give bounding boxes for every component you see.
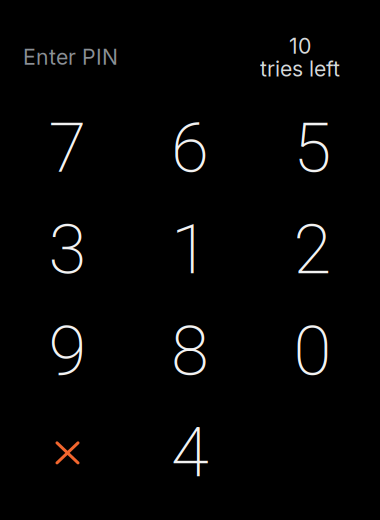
- button[interactable]: 9: [6, 301, 129, 402]
- button[interactable]: 0: [251, 301, 374, 402]
- staticText: 8: [171, 311, 209, 392]
- button[interactable]: 3: [6, 199, 129, 301]
- staticText: 0: [293, 311, 331, 392]
- staticText: 1: [171, 210, 209, 290]
- staticText: tries left: [260, 56, 340, 82]
- button[interactable]: 5: [251, 98, 374, 199]
- button[interactable]: 4: [129, 402, 251, 504]
- staticText: 2: [293, 210, 331, 290]
- staticText: Enter PIN: [23, 44, 118, 70]
- button[interactable]: 6: [129, 98, 251, 199]
- button[interactable]: 1: [129, 199, 251, 301]
- staticText: 10: [289, 33, 311, 59]
- button[interactable]: 7: [6, 98, 129, 199]
- staticText: 6: [171, 108, 209, 189]
- staticText: 5: [293, 108, 331, 189]
- staticText: 3: [48, 210, 86, 290]
- staticText: 7: [48, 108, 86, 189]
- button[interactable]: 2: [251, 199, 374, 301]
- button[interactable]: 8: [129, 301, 251, 402]
- staticText: 9: [48, 311, 86, 392]
- staticText: 4: [171, 413, 209, 493]
- button[interactable]: Delete: [6, 402, 129, 504]
